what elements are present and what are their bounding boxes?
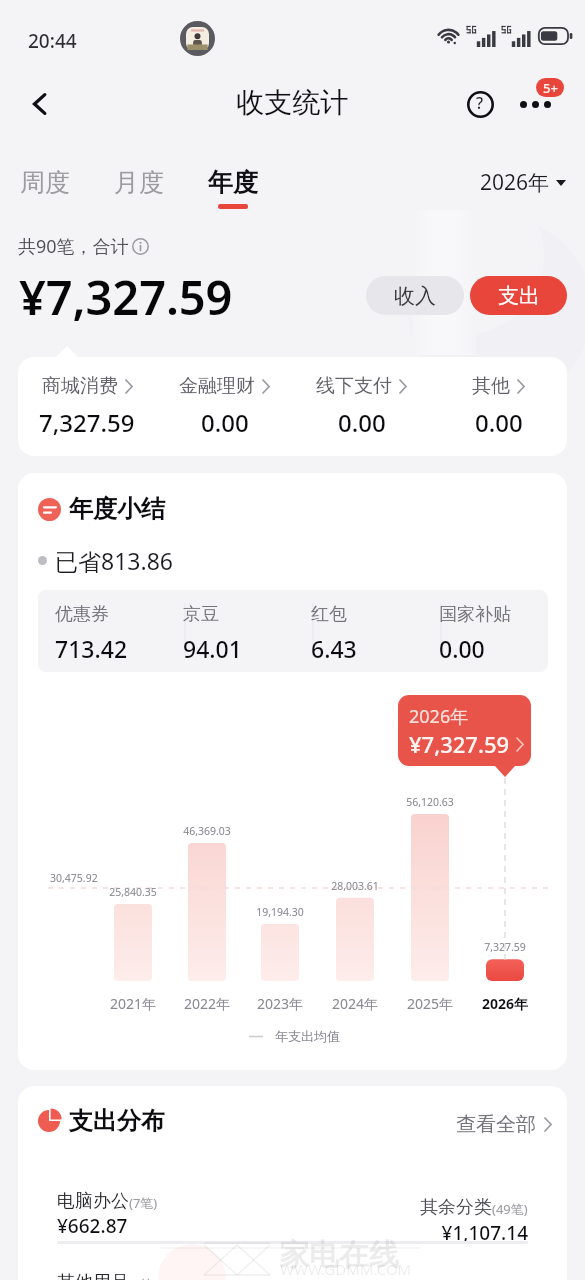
button[interactable]: 2026年	[398, 695, 531, 766]
staticText: 共90笔，合计	[18, 234, 129, 259]
staticText: WWW.GDMM.COM	[280, 1259, 412, 1279]
staticText: 年支出均值	[275, 1028, 340, 1044]
staticText: 家电在线	[279, 1236, 399, 1274]
staticText: 56,120.63	[390, 795, 470, 809]
staticText: 支出	[498, 283, 540, 309]
staticText: 已省813.86	[55, 545, 173, 576]
staticText: 46,369.03	[167, 824, 247, 838]
staticText: 年度	[208, 167, 258, 198]
staticText: 周度	[20, 167, 70, 198]
staticText: (49笔)	[492, 1200, 528, 1218]
staticText: 其余分类	[420, 1196, 492, 1219]
staticText: 7,327.59	[39, 406, 135, 439]
staticText: (5笔)	[129, 1275, 158, 1280]
staticText: 国家补贴	[439, 603, 511, 626]
staticText: 19,194.30	[240, 905, 320, 919]
staticText: (7笔)	[129, 1194, 158, 1212]
button[interactable]: 商城消费	[18, 357, 156, 456]
button[interactable]: 月度	[114, 167, 164, 209]
staticText: 金融理财	[179, 374, 255, 398]
staticText: 红包	[311, 603, 347, 626]
staticText: 2021年	[93, 994, 173, 1013]
button[interactable]: Help	[456, 80, 504, 128]
button[interactable]: 查看全部	[456, 1112, 552, 1137]
button[interactable]: 金融理财	[156, 357, 293, 456]
button[interactable]: 周度	[20, 167, 70, 209]
staticText: 支出分布	[69, 1106, 165, 1136]
staticText: 收入	[394, 283, 436, 309]
button[interactable]: 2026年	[480, 168, 566, 197]
staticText: 5+	[543, 79, 558, 97]
staticText: ¥7,327.59	[19, 265, 233, 329]
staticText: 94.01	[183, 633, 242, 664]
staticText: 优惠券	[55, 603, 109, 626]
staticText: 20:44	[28, 28, 77, 54]
staticText: 28,003.61	[315, 879, 395, 893]
staticText: 0.00	[475, 406, 523, 439]
staticText: 7,327.59	[465, 940, 545, 954]
staticText: ?	[476, 92, 484, 114]
staticText: 电脑办公	[57, 1190, 129, 1213]
staticText: 2026年	[409, 704, 469, 729]
staticText: ¥7,327.59	[409, 729, 510, 759]
staticText: 713.42	[55, 633, 128, 664]
staticText: 月度	[114, 167, 164, 198]
staticText: 2026年	[465, 994, 545, 1013]
staticText: 年度小结	[69, 494, 165, 524]
staticText: 2024年	[315, 994, 395, 1013]
staticText: 京豆	[183, 603, 219, 626]
staticText: ¥662.87	[57, 1213, 128, 1239]
staticText: 6.43	[311, 633, 357, 664]
button[interactable]: Back	[14, 78, 66, 130]
staticText: 2025年	[390, 994, 470, 1013]
staticText: ¥1,107.14	[397, 1220, 528, 1246]
staticText: 2026年	[480, 168, 550, 197]
button[interactable]: 线下支付	[293, 357, 430, 456]
staticText: 25,840.35	[93, 885, 173, 899]
staticText: 0.00	[338, 406, 386, 439]
staticText: 0.00	[201, 406, 249, 439]
staticText: 0.00	[439, 633, 485, 664]
button[interactable]: More options	[511, 80, 559, 128]
staticText: 线下支付	[316, 374, 392, 398]
staticText: 其他	[472, 374, 510, 398]
staticText: 其他用品	[57, 1271, 129, 1280]
button[interactable]: 年度	[208, 167, 258, 209]
staticText: 2022年	[167, 994, 247, 1013]
staticText: 商城消费	[42, 374, 118, 398]
staticText: 收支统计	[0, 85, 585, 120]
button[interactable]: 支出	[470, 276, 567, 315]
staticText: 查看全部	[456, 1112, 536, 1137]
button[interactable]: 其他	[430, 357, 567, 456]
staticText: 30,475.92	[50, 871, 98, 885]
staticText: 2023年	[240, 994, 320, 1013]
button[interactable]: 收入	[366, 276, 464, 315]
